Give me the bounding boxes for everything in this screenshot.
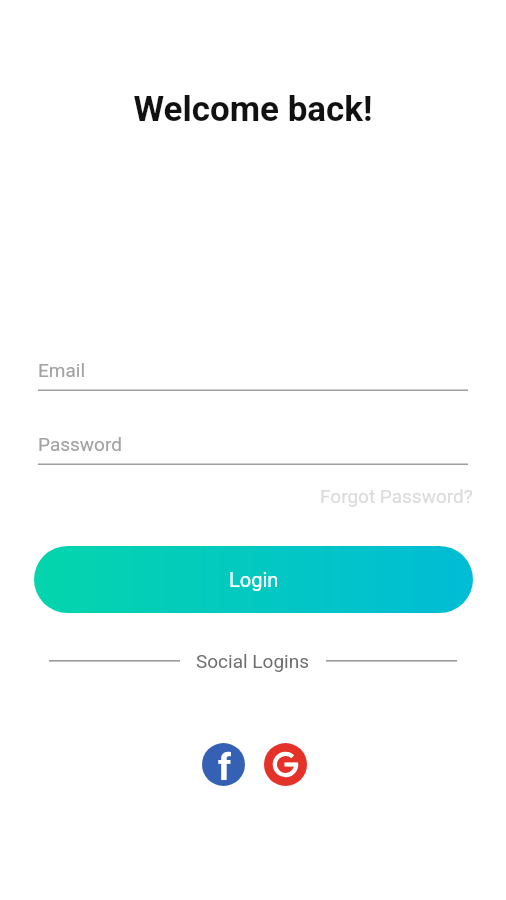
staticText: Social Logins [196, 650, 310, 672]
button[interactable]: Forgot Password? [320, 485, 473, 507]
staticText: Email [38, 359, 86, 381]
button[interactable]: Sign in with Facebook [202, 743, 245, 786]
button[interactable]: Sign in with Google [264, 743, 307, 786]
staticText: Password [38, 433, 122, 455]
staticText: f [218, 747, 231, 786]
staticText: Welcome back! [0, 89, 506, 130]
button[interactable]: Login [34, 546, 473, 613]
staticText: Forgot Password? [320, 485, 473, 507]
staticText: Login [229, 568, 279, 591]
